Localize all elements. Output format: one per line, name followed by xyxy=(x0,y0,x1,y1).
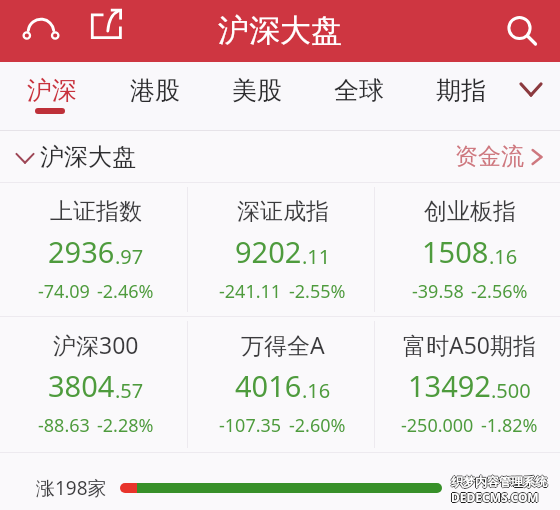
button[interactable]: 沪深300 xyxy=(0,317,186,452)
staticText: .97 xyxy=(115,243,144,270)
staticText: DEDECMS.COM xyxy=(450,489,538,505)
staticText: -39.58 xyxy=(412,279,464,304)
staticText: 1508 xyxy=(422,232,489,271)
staticText: -107.35 xyxy=(219,413,282,438)
staticText: 织梦内容管理系统 xyxy=(450,474,546,489)
button[interactable]: 万得全A xyxy=(186,317,373,452)
button[interactable]: Search xyxy=(498,8,546,56)
button[interactable]: 创业板指 xyxy=(373,183,560,316)
staticText: 3804 xyxy=(48,366,115,405)
staticText: .16 xyxy=(489,243,518,270)
button[interactable]: More tabs xyxy=(506,70,546,110)
staticText: 上证指数 xyxy=(50,197,142,226)
staticText: 万得全A xyxy=(241,329,325,360)
staticText: DEDECMS.COM xyxy=(452,489,540,505)
staticText: 织梦内容管理系统 xyxy=(451,475,547,490)
button[interactable]: 资金流 xyxy=(455,142,548,171)
staticText: 富时A50期指 xyxy=(403,329,537,360)
staticText: 资金流 xyxy=(455,142,524,171)
staticText: -2.55% xyxy=(289,279,346,304)
staticText: -2.28% xyxy=(97,413,154,438)
staticText: 沪深300 xyxy=(53,329,139,360)
staticText: 深证成指 xyxy=(237,197,329,226)
staticText: 港股 xyxy=(130,75,180,106)
staticText: DEDECMS.COM xyxy=(451,490,539,506)
staticText: 全球 xyxy=(334,75,384,106)
button[interactable]: Live broadcast xyxy=(17,8,65,56)
button[interactable]: 沪深 xyxy=(0,62,103,130)
staticText: -2.60% xyxy=(289,413,346,438)
staticText: -241.11 xyxy=(219,279,282,304)
button[interactable]: 上证指数 xyxy=(0,183,186,316)
staticText: 13492 xyxy=(408,366,491,405)
staticText: 期指 xyxy=(436,75,486,106)
staticText: -2.46% xyxy=(97,279,154,304)
button[interactable]: 期指 xyxy=(410,62,512,130)
staticText: -2.56% xyxy=(471,279,528,304)
button[interactable]: Share xyxy=(86,6,130,50)
button[interactable]: 沪深大盘 xyxy=(14,142,136,172)
staticText: 沪深大盘 xyxy=(218,11,342,50)
staticText: -250.000 xyxy=(401,413,474,438)
button[interactable]: 美股 xyxy=(206,62,308,130)
staticText: 沪深 xyxy=(27,75,77,106)
button[interactable]: 全球 xyxy=(308,62,410,130)
staticText: 创业板指 xyxy=(424,197,516,226)
staticText: .57 xyxy=(115,377,144,404)
staticText: .16 xyxy=(302,377,331,404)
staticText: 织梦内容管理系统 xyxy=(452,474,548,489)
staticText: -74.09 xyxy=(38,279,90,304)
staticText: 织梦内容管理系统 xyxy=(451,473,547,488)
staticText: 涨198家 xyxy=(36,475,107,501)
staticText: .500 xyxy=(491,377,531,404)
staticText: DEDECMS.COM xyxy=(451,489,539,505)
button[interactable]: 富时A50期指 xyxy=(373,317,560,452)
staticText: -88.63 xyxy=(38,413,90,438)
staticText: DEDECMS.COM xyxy=(451,488,539,504)
staticText: 9202 xyxy=(235,232,302,271)
staticText: 美股 xyxy=(232,75,282,106)
staticText: 织梦内容管理系统 xyxy=(451,474,547,489)
staticText: 4016 xyxy=(235,366,302,405)
staticText: 沪深大盘 xyxy=(40,142,136,172)
staticText: -1.82% xyxy=(481,413,538,438)
button[interactable]: 港股 xyxy=(103,62,206,130)
staticText: .11 xyxy=(302,243,331,270)
button[interactable]: 深证成指 xyxy=(186,183,373,316)
staticText: 2936 xyxy=(48,232,115,271)
